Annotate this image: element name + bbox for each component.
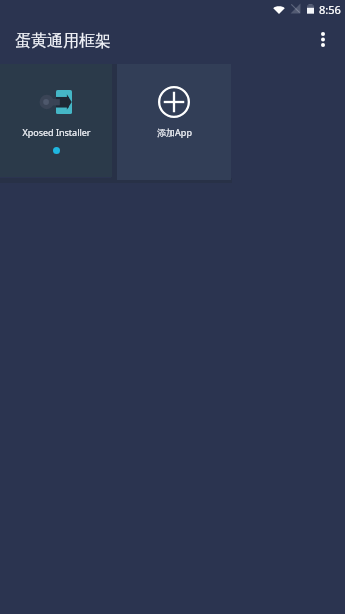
button[interactable]: More options <box>301 20 345 64</box>
staticText: 8:56 <box>319 2 341 17</box>
button[interactable]: Xposed Installer <box>0 64 112 177</box>
staticText: 添加App <box>157 126 192 138</box>
staticText: Xposed Installer <box>22 126 91 138</box>
staticText: 蛋黄通用框架 <box>15 31 111 51</box>
button[interactable]: 添加App <box>117 64 231 180</box>
